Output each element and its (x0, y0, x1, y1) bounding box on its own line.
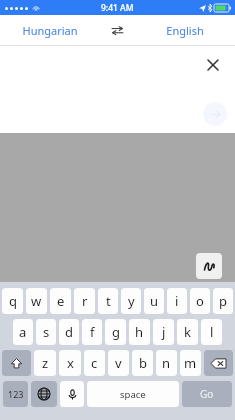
button[interactable]: b (132, 350, 153, 376)
staticText: English (166, 23, 204, 38)
staticText: Hungarian (22, 23, 78, 38)
staticText: z (42, 354, 49, 372)
button[interactable]: k (177, 319, 198, 345)
staticText: s (43, 323, 50, 341)
staticText: t (106, 292, 111, 310)
button[interactable]: f (82, 319, 102, 345)
button[interactable]: v (108, 350, 129, 376)
button[interactable]: Swap languages (100, 15, 134, 45)
staticText: b (139, 354, 147, 372)
button[interactable]: Go (182, 381, 232, 407)
button[interactable]: Handwriting input (196, 253, 222, 279)
button[interactable]: m (180, 350, 201, 376)
button[interactable]: Voice input (60, 381, 84, 407)
staticText: i (175, 292, 179, 310)
staticText: e (57, 292, 65, 310)
button[interactable]: Shift (2, 350, 31, 376)
staticText: q (9, 292, 17, 310)
staticText: u (150, 292, 159, 310)
button[interactable]: j (153, 319, 174, 345)
button[interactable]: w (26, 288, 47, 314)
staticText: y (128, 292, 135, 310)
button[interactable]: l (201, 319, 222, 345)
staticText: o (196, 292, 204, 310)
button[interactable]: Clear (203, 55, 223, 75)
staticText: n (162, 354, 171, 372)
button[interactable]: z (34, 350, 56, 376)
button[interactable]: t (98, 288, 118, 314)
staticText: h (135, 323, 144, 341)
staticText: c (91, 354, 98, 372)
staticText: d (65, 323, 73, 341)
button[interactable]: y (121, 288, 141, 314)
button[interactable]: i (167, 288, 187, 314)
button[interactable]: o (190, 288, 210, 314)
staticText: space (120, 388, 146, 401)
staticText: Go (200, 387, 214, 401)
button[interactable]: n (156, 350, 177, 376)
staticText: g (112, 323, 120, 341)
button[interactable]: x (59, 350, 81, 376)
button[interactable]: Backspace (204, 350, 233, 376)
staticText: j (162, 323, 166, 341)
button[interactable]: d (59, 319, 79, 345)
button[interactable]: Hungarian (0, 15, 100, 45)
button[interactable]: h (129, 319, 150, 345)
button[interactable]: u (144, 288, 164, 314)
button[interactable]: r (74, 288, 95, 314)
button[interactable]: g (105, 319, 126, 345)
staticText: m (184, 354, 197, 372)
staticText: 9:41 AM (101, 2, 134, 14)
staticText: l (210, 323, 214, 341)
staticText: r (82, 292, 88, 310)
staticText: a (19, 323, 27, 341)
staticText: v (115, 354, 122, 372)
button[interactable]: q (2, 288, 23, 314)
staticText: 123 (8, 388, 24, 400)
button[interactable]: s (36, 319, 56, 345)
staticText: x (67, 354, 74, 372)
button[interactable]: p (213, 288, 233, 314)
button[interactable]: e (50, 288, 71, 314)
button[interactable]: a (13, 319, 33, 345)
button[interactable]: English (134, 15, 235, 45)
button[interactable]: c (84, 350, 105, 376)
button[interactable]: Translate (203, 102, 227, 126)
button[interactable]: 123 (3, 381, 28, 407)
staticText: f (90, 323, 95, 341)
button[interactable]: Switch keyboard (31, 381, 57, 407)
staticText: p (219, 292, 227, 310)
staticText: k (184, 323, 191, 341)
staticText: w (31, 292, 42, 310)
button[interactable]: space (87, 381, 179, 407)
